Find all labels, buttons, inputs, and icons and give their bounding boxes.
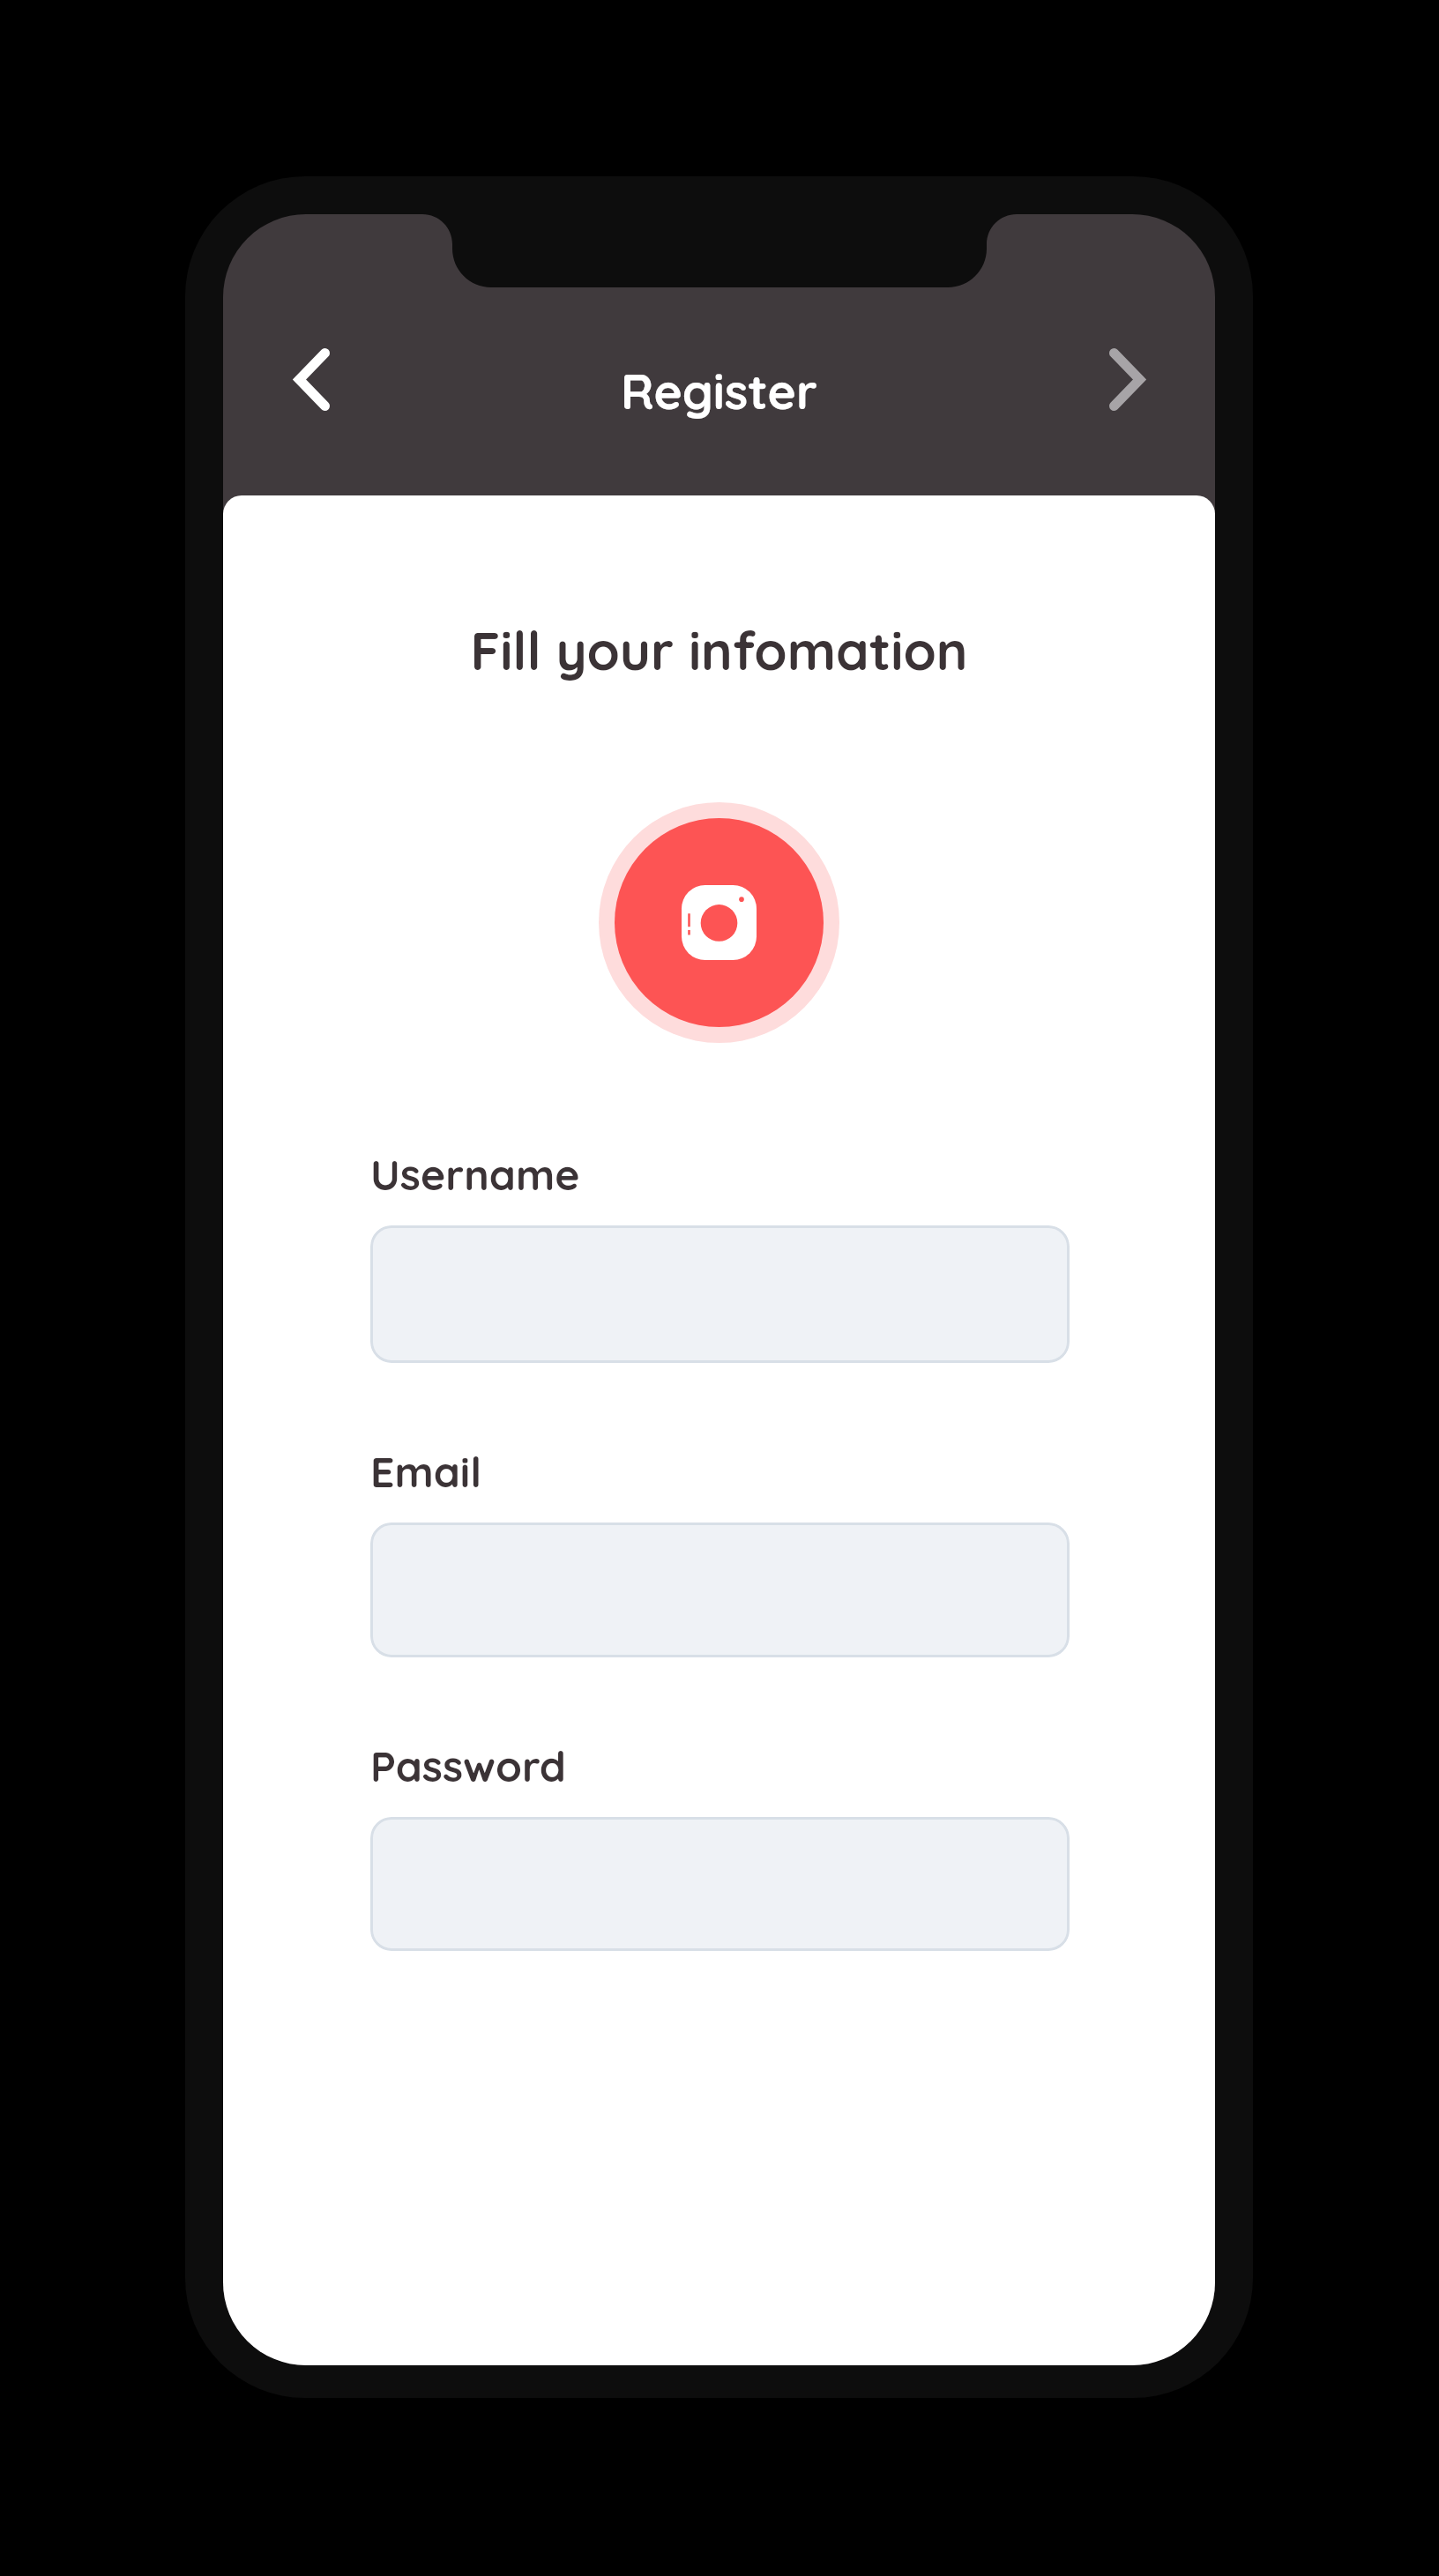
staticText: Password [370,1739,566,1792]
staticText: Email [370,1445,482,1498]
button[interactable]: Username input field [370,1225,1070,1363]
button[interactable]: Password input field [370,1817,1070,1951]
button[interactable]: Email input field [370,1523,1070,1657]
staticText: Register [223,361,1215,421]
button[interactable]: Back [265,317,360,441]
staticText: Fill your infomation [223,617,1215,683]
button[interactable]: Change profile photo [599,802,839,1043]
button[interactable]: Next [1079,317,1174,441]
staticText: Username [370,1148,580,1201]
